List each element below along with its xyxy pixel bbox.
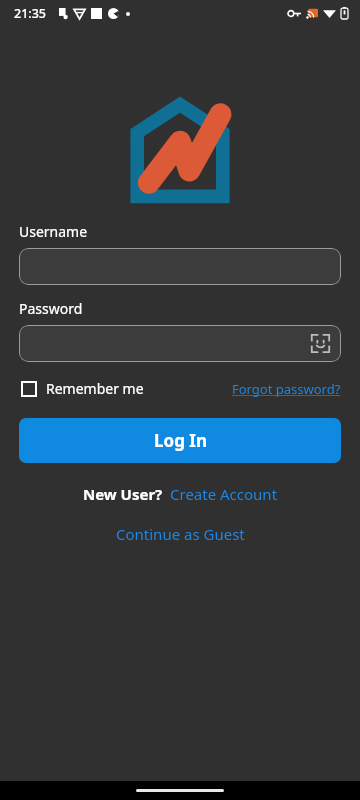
staticText: Continue as Guest xyxy=(116,524,245,544)
button[interactable] xyxy=(19,248,341,285)
button[interactable]: Remember me xyxy=(19,374,146,403)
button[interactable]: Log In xyxy=(19,418,341,463)
staticText: Log In xyxy=(154,429,207,452)
staticText: Username xyxy=(19,222,88,241)
staticText: Create Account xyxy=(170,484,278,504)
button[interactable]: Continue as Guest xyxy=(116,524,245,544)
staticText: Remember me xyxy=(46,379,144,398)
other: Face unlock xyxy=(310,333,331,354)
staticText: 21:35 xyxy=(14,5,47,22)
button[interactable]: Create Account xyxy=(170,484,278,504)
staticText: Forgot password? xyxy=(232,380,341,398)
staticText: Password xyxy=(19,299,83,318)
button[interactable]: Face unlock xyxy=(19,325,341,362)
staticText: New User? xyxy=(83,484,163,504)
button[interactable]: Forgot password? xyxy=(232,375,341,403)
